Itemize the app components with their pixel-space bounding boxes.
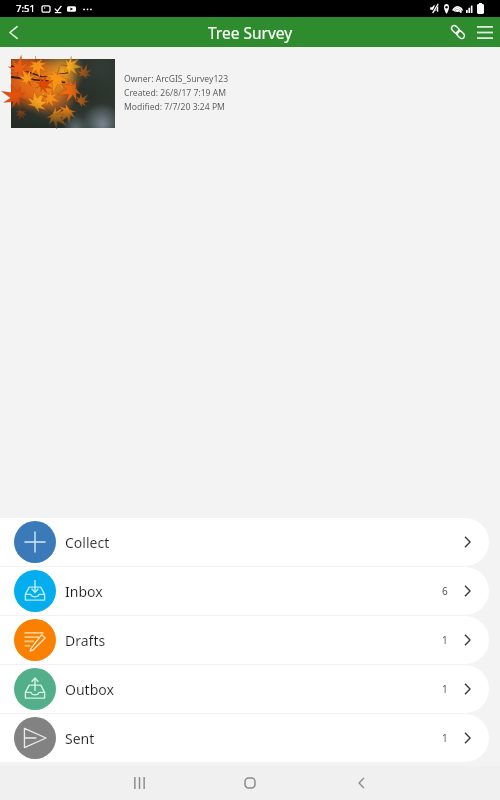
- button[interactable]: Collect: [0, 518, 489, 566]
- staticText: 7:51: [16, 2, 35, 15]
- button[interactable]: Outbox: [0, 665, 489, 713]
- staticText: Tree Survey: [208, 22, 293, 43]
- staticText: Modified: 7/7/20 3:24 PM: [124, 101, 225, 113]
- button[interactable]: Home: [228, 766, 272, 800]
- button[interactable]: Menu: [470, 17, 500, 47]
- button[interactable]: Sent: [0, 714, 489, 762]
- staticText: Owner: ArcGIS_Survey123: [124, 73, 229, 85]
- staticText: 1: [442, 731, 448, 745]
- staticText: Outbox: [65, 680, 114, 699]
- staticText: Drafts: [65, 631, 106, 650]
- button[interactable]: Inbox: [0, 567, 489, 615]
- staticText: Collect: [65, 533, 110, 552]
- staticText: Sent: [65, 729, 95, 748]
- staticText: Inbox: [65, 582, 103, 601]
- staticText: Created: 26/8/17 7:19 AM: [124, 87, 227, 99]
- button[interactable]: Share link: [440, 17, 470, 47]
- button[interactable]: Drafts: [0, 616, 489, 664]
- staticText: 1: [442, 633, 448, 647]
- button[interactable]: Back: [339, 766, 383, 800]
- staticText: 1: [442, 682, 448, 696]
- button[interactable]: Back: [0, 17, 34, 47]
- staticText: 6: [442, 584, 448, 598]
- button[interactable]: Recents: [117, 766, 161, 800]
